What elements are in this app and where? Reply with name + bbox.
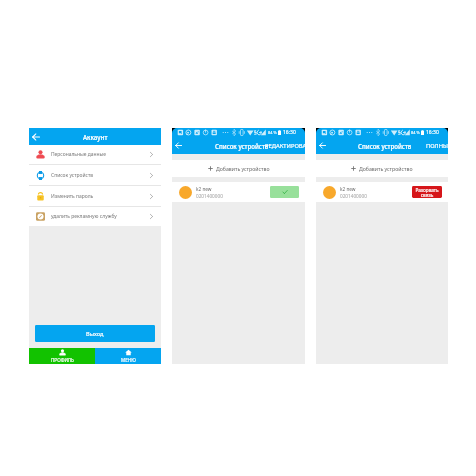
staticText: k2 new	[340, 186, 356, 192]
button[interactable]: Персональные данные	[29, 145, 161, 164]
staticText: Изменить пароль	[51, 193, 141, 200]
staticText: 16:30	[283, 129, 296, 136]
staticText: ПРОФИЛЬ	[51, 357, 74, 363]
button[interactable]: Добавить устройство	[172, 160, 305, 177]
staticText: Список устройств	[358, 142, 412, 150]
button[interactable]: МЕНЮ	[95, 348, 161, 364]
button[interactable]: Back	[29, 128, 43, 145]
staticText: 16:30	[426, 129, 439, 136]
button[interactable]: Список устройств	[29, 165, 161, 185]
staticText: Разорвать связь	[412, 187, 442, 198]
button[interactable]: удалить рекламную службу	[29, 207, 161, 226]
staticText: удалить рекламную службу	[51, 213, 141, 220]
staticText: Добавить устройство	[359, 165, 413, 172]
button[interactable]: РЕДАКТИРОВАТЬ	[265, 142, 305, 150]
button[interactable]: Разорвать связь	[412, 186, 442, 198]
staticText: Список устройств	[51, 172, 141, 179]
staticText: Выход	[86, 330, 104, 338]
button[interactable]: ПОЛНЫЙ ДОСТУП	[426, 142, 448, 150]
button[interactable]: Back	[316, 137, 329, 154]
staticText: Персональные данные	[51, 151, 141, 158]
staticText: 0201400000	[196, 193, 223, 199]
button[interactable]: Connected	[270, 186, 299, 198]
staticText: Список устройств	[215, 142, 269, 150]
staticText: МЕНЮ	[121, 357, 136, 363]
staticText: 84 %	[268, 130, 277, 135]
button[interactable]: Выход	[35, 325, 155, 342]
staticText: Аккаунт	[83, 133, 108, 141]
staticText: k2 new	[196, 186, 212, 192]
button[interactable]: Добавить устройство	[316, 160, 448, 177]
button[interactable]: Back	[172, 137, 185, 154]
button[interactable]: ПРОФИЛЬ	[29, 348, 95, 364]
staticText: 84 %	[411, 130, 420, 135]
staticText: Добавить устройство	[216, 165, 270, 172]
staticText: 0201400000	[340, 193, 367, 199]
button[interactable]: Изменить пароль	[29, 186, 161, 206]
